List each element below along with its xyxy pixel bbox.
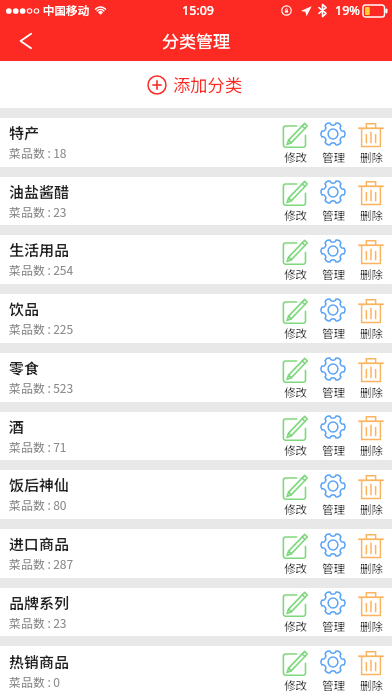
staticText: 生活用品 (9, 239, 70, 261)
button[interactable]: Manage (314, 294, 352, 343)
staticText: 管理 (322, 207, 345, 224)
staticText: 菜品数 : 225 (9, 320, 74, 337)
button[interactable]: Delete (352, 588, 390, 636)
staticText: 删除 (360, 384, 383, 401)
staticText: 菜品数 : 71 (9, 438, 67, 455)
button[interactable]: 生活用品 (0, 235, 392, 284)
staticText: 修改 (284, 442, 307, 459)
staticText: 修改 (284, 325, 307, 342)
button[interactable]: Delete (352, 294, 390, 343)
button[interactable]: Manage (314, 118, 352, 167)
staticText: 进口商品 (9, 533, 70, 555)
staticText: 修改 (284, 560, 307, 577)
button[interactable]: Delete (352, 646, 390, 696)
staticText: 修改 (284, 501, 307, 518)
button[interactable]: Delete (352, 118, 390, 167)
button[interactable]: Edit (276, 235, 314, 284)
staticText: 修改 (284, 207, 307, 224)
staticText: 菜品数 : 287 (9, 555, 74, 572)
staticText: 菜品数 : 523 (9, 379, 74, 396)
staticText: 特产 (9, 122, 40, 144)
staticText: 菜品数 : 18 (9, 144, 67, 161)
staticText: 删除 (360, 501, 383, 518)
staticText: 管理 (322, 618, 345, 635)
staticText: 零食 (9, 357, 40, 379)
button[interactable]: 进口商品 (0, 529, 392, 578)
staticText: 管理 (322, 442, 345, 459)
button[interactable]: Delete (352, 353, 390, 402)
staticText: 添加分类 (173, 72, 243, 97)
staticText: 管理 (322, 149, 345, 166)
button[interactable]: Edit (276, 294, 314, 343)
button[interactable]: Edit (276, 646, 314, 696)
button[interactable]: Edit (276, 177, 314, 225)
button[interactable]: Manage (314, 470, 352, 519)
staticText: 修改 (284, 384, 307, 401)
button[interactable]: 酒 (0, 412, 392, 460)
button[interactable]: 零食 (0, 353, 392, 402)
staticText: 热销商品 (9, 651, 70, 673)
staticText: 删除 (360, 149, 383, 166)
staticText: 删除 (360, 560, 383, 577)
staticText: 删除 (360, 207, 383, 224)
staticText: 修改 (284, 266, 307, 283)
button[interactable]: Edit (276, 529, 314, 578)
staticText: 删除 (360, 618, 383, 635)
staticText: 管理 (322, 325, 345, 342)
staticText: 菜品数 : 80 (9, 496, 67, 513)
staticText: 修改 (284, 677, 307, 694)
staticText: 修改 (284, 149, 307, 166)
staticText: 管理 (322, 501, 345, 518)
staticText: 管理 (322, 384, 345, 401)
staticText: 删除 (360, 677, 383, 694)
staticText: 菜品数 : 23 (9, 614, 67, 631)
button[interactable]: 特产 (0, 118, 392, 167)
button[interactable]: Edit (276, 353, 314, 402)
staticText: 酒 (9, 416, 25, 438)
button[interactable]: Delete (352, 412, 390, 460)
button[interactable]: Edit (276, 118, 314, 167)
button[interactable]: 油盐酱醋 (0, 177, 392, 225)
button[interactable]: Manage (314, 235, 352, 284)
button[interactable]: Delete (352, 470, 390, 519)
button[interactable]: 添加分类 (137, 67, 253, 102)
button[interactable]: Delete (352, 177, 390, 225)
button[interactable]: Manage (314, 529, 352, 578)
staticText: 饭后神仙 (9, 474, 70, 496)
staticText: 菜品数 : 0 (9, 673, 60, 690)
staticText: 油盐酱醋 (9, 181, 70, 203)
button[interactable]: 饭后神仙 (0, 470, 392, 519)
button[interactable]: Manage (314, 177, 352, 225)
button[interactable]: Edit (276, 588, 314, 636)
staticText: 品牌系列 (9, 592, 70, 614)
button[interactable]: Edit (276, 412, 314, 460)
button[interactable]: Manage (314, 412, 352, 460)
staticText: 管理 (322, 266, 345, 283)
staticText: 中国移动 (43, 2, 89, 19)
button[interactable]: 热销商品 (0, 646, 392, 696)
button[interactable]: Edit (276, 470, 314, 519)
staticText: 删除 (360, 442, 383, 459)
button[interactable]: Back (0, 20, 50, 61)
button[interactable]: 饮品 (0, 294, 392, 343)
staticText: 饮品 (9, 298, 40, 320)
staticText: 菜品数 : 254 (9, 261, 74, 278)
staticText: 菜品数 : 23 (9, 203, 67, 220)
staticText: 管理 (322, 677, 345, 694)
staticText: 19% (335, 2, 360, 19)
button[interactable]: Delete (352, 529, 390, 578)
button[interactable]: Manage (314, 646, 352, 696)
staticText: 删除 (360, 325, 383, 342)
staticText: 15:09 (182, 2, 215, 19)
staticText: 管理 (322, 560, 345, 577)
button[interactable]: Manage (314, 588, 352, 636)
button[interactable]: Delete (352, 235, 390, 284)
staticText: 删除 (360, 266, 383, 283)
button[interactable]: 品牌系列 (0, 588, 392, 636)
staticText: 修改 (284, 618, 307, 635)
staticText: 分类管理 (162, 28, 230, 53)
button[interactable]: Manage (314, 353, 352, 402)
